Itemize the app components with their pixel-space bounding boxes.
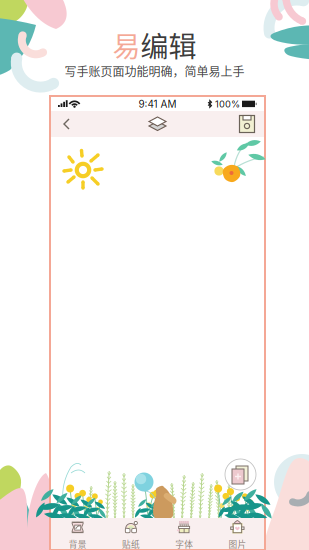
staticText: 9:41 AM: [138, 98, 176, 110]
button[interactable]: 贴纸: [104, 518, 157, 549]
button[interactable]: Save: [236, 111, 258, 137]
button[interactable]: 图片: [211, 518, 264, 549]
staticText: 背景: [69, 538, 87, 550]
staticText: 100%: [215, 98, 240, 110]
staticText: 字体: [175, 538, 193, 550]
button[interactable]: 字体: [157, 518, 211, 549]
staticText: 编辑: [140, 25, 196, 65]
staticText: 易: [112, 25, 140, 65]
staticText: 贴纸: [122, 538, 140, 550]
button[interactable]: New page: [225, 459, 256, 490]
button[interactable]: Back: [55, 111, 81, 137]
staticText: 图片: [228, 538, 246, 550]
button[interactable]: 背景: [51, 518, 104, 549]
button[interactable]: Layers: [144, 111, 170, 137]
staticText: 写手账页面功能明确，简单易上手: [64, 62, 244, 80]
